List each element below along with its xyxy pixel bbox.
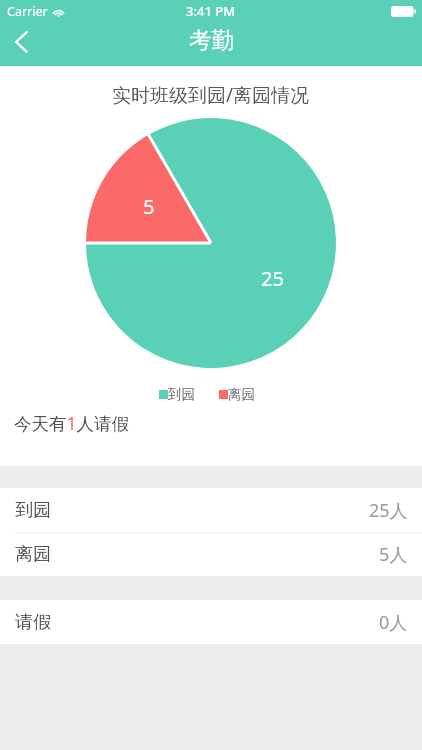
staticText: 请假 bbox=[15, 611, 51, 634]
button[interactable]: 请假 bbox=[0, 600, 422, 644]
button[interactable]: 离园 bbox=[0, 532, 422, 576]
button[interactable]: Back bbox=[0, 23, 43, 66]
staticText: 5人 bbox=[379, 542, 408, 567]
staticText: 到园 bbox=[15, 499, 51, 522]
staticText: 5 bbox=[143, 193, 155, 220]
staticText: 今天有1人请假 bbox=[14, 411, 130, 435]
button[interactable]: 到园 bbox=[0, 488, 422, 532]
staticText: 实时班级到园/离园情况 bbox=[112, 82, 310, 108]
staticText: 考勤 bbox=[189, 26, 234, 54]
staticText: 25 bbox=[261, 265, 284, 292]
staticText: 离园 bbox=[228, 386, 255, 403]
staticText: 0人 bbox=[379, 610, 408, 635]
staticText: 25人 bbox=[369, 498, 408, 523]
staticText: 3:41 PM bbox=[186, 2, 236, 20]
staticText: 离园 bbox=[15, 543, 51, 566]
staticText: Carrier bbox=[7, 3, 48, 20]
staticText: 到园 bbox=[168, 386, 195, 403]
